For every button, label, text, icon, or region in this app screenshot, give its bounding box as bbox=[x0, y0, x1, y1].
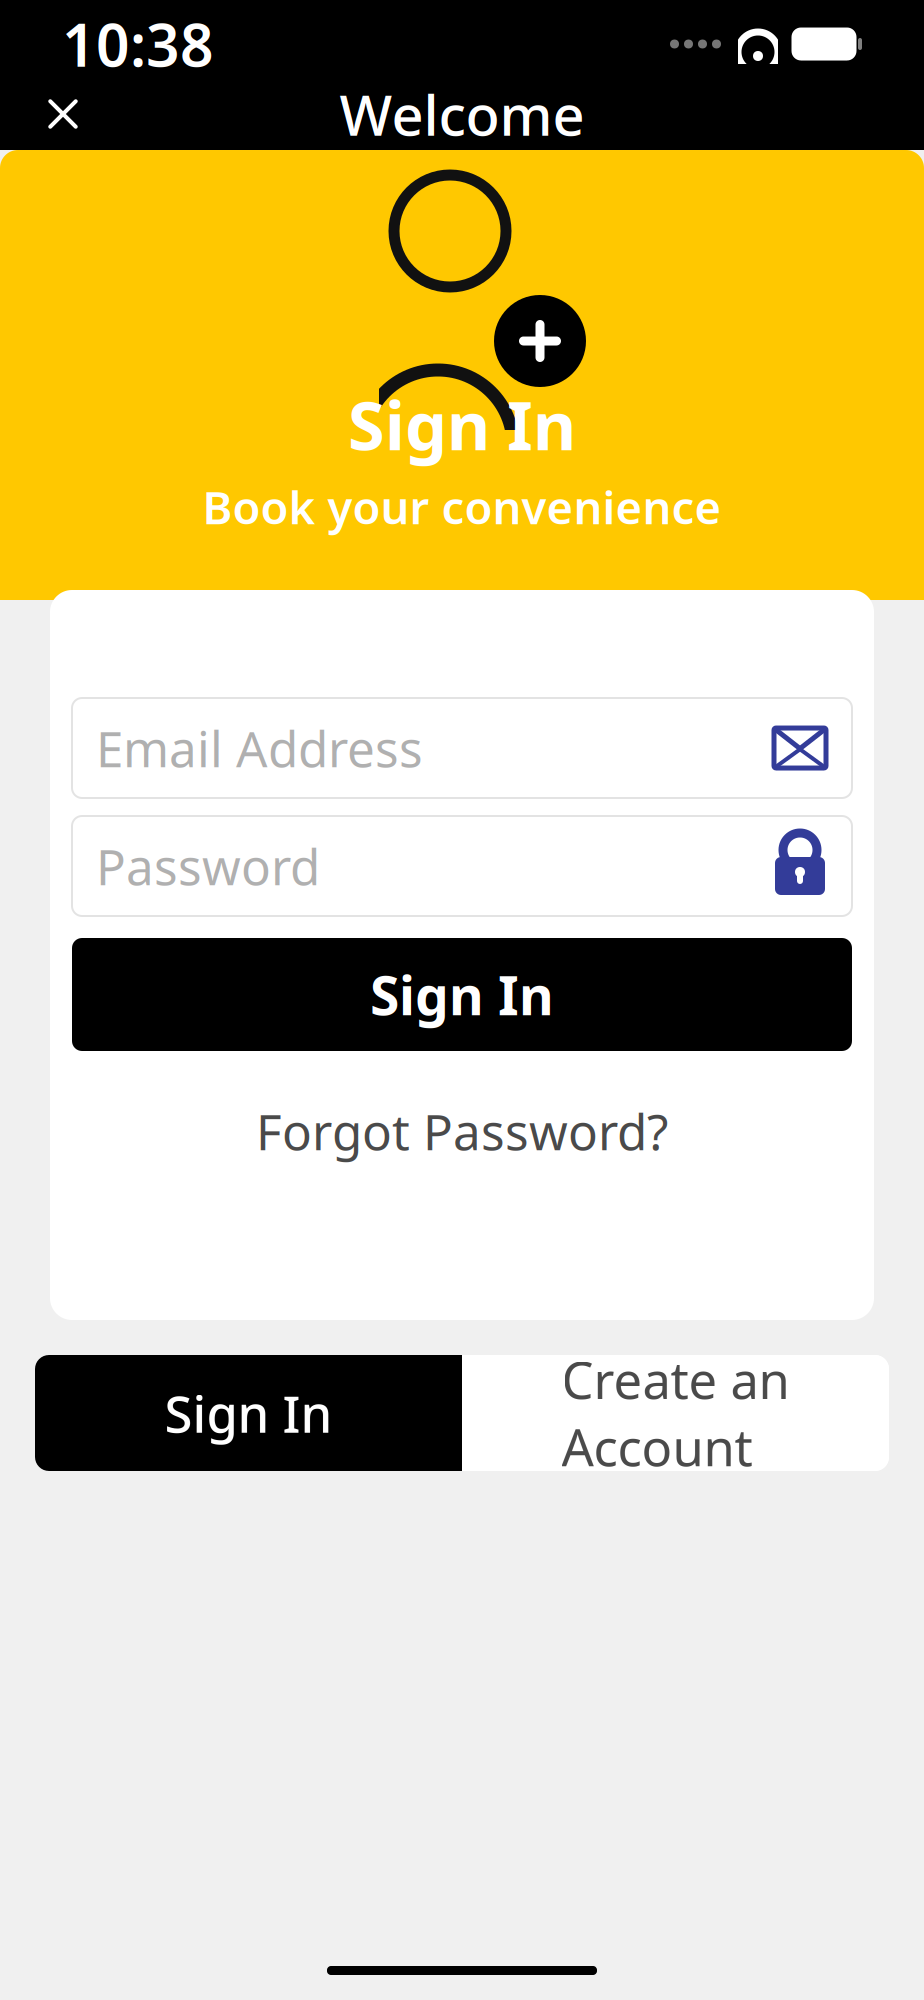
staticText: Book your convenience bbox=[202, 476, 721, 537]
staticText: Forgot Password? bbox=[256, 1098, 668, 1164]
button[interactable]: Forgot Password? bbox=[72, 1103, 852, 1159]
staticText: Email Address bbox=[96, 715, 423, 781]
staticText: Create an Account bbox=[561, 1346, 789, 1480]
button[interactable]: Close bbox=[20, 71, 106, 157]
staticText: 10:38 bbox=[62, 5, 214, 83]
staticText: Welcome bbox=[339, 77, 584, 151]
button[interactable]: Sign In bbox=[35, 1355, 462, 1471]
staticText: Sign In bbox=[348, 380, 576, 468]
button[interactable]: Sign In bbox=[72, 938, 852, 1051]
staticText: Sign In bbox=[164, 1379, 332, 1447]
button[interactable]: Password bbox=[72, 816, 852, 916]
button[interactable]: Email Address bbox=[72, 698, 852, 798]
staticText: Sign In bbox=[370, 959, 554, 1030]
button[interactable]: Create an Account bbox=[462, 1355, 889, 1471]
staticText: Password bbox=[96, 833, 320, 899]
